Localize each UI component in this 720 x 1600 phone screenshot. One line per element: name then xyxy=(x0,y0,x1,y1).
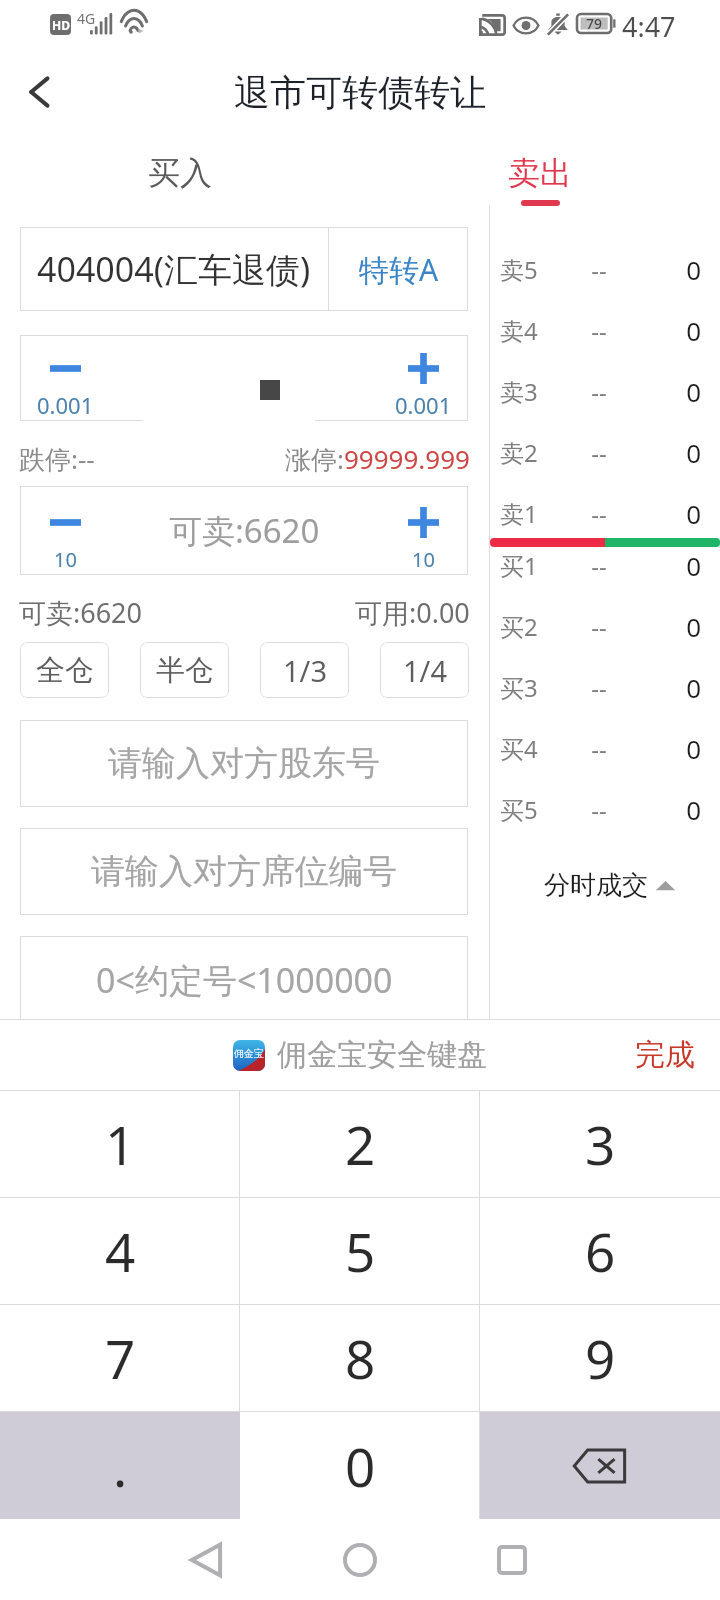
button[interactable]: 半仓 xyxy=(140,642,229,698)
button[interactable]: 买3 xyxy=(490,663,720,711)
staticText: 0 xyxy=(627,609,701,644)
staticText: -- xyxy=(571,314,627,347)
button[interactable]: . xyxy=(0,1412,240,1519)
button[interactable]: 8 xyxy=(240,1305,480,1411)
button[interactable]: 6 xyxy=(480,1198,720,1304)
staticText: 买5 xyxy=(500,793,571,826)
staticText: 0 xyxy=(627,548,701,583)
button[interactable]: 完成 xyxy=(610,1024,720,1086)
staticText: 1/3 xyxy=(283,651,327,690)
staticText: 4:47 xyxy=(622,8,676,45)
staticText: 卖4 xyxy=(500,314,571,347)
staticText: 涨停: xyxy=(285,441,344,477)
staticText: 8 xyxy=(345,1322,376,1394)
staticText: 7 xyxy=(105,1322,136,1394)
staticText: 4G xyxy=(77,9,96,28)
staticText: 0<约定号<1000000 xyxy=(96,957,393,1003)
button[interactable]: 卖5 xyxy=(490,245,720,293)
staticText: 0.001 xyxy=(37,390,94,420)
staticText: 99999.999 xyxy=(344,441,470,476)
button[interactable]: 卖2 xyxy=(490,428,720,476)
button[interactable]: 9 xyxy=(480,1305,720,1411)
staticText: 2 xyxy=(345,1108,376,1180)
staticText: -- xyxy=(571,793,627,826)
button[interactable]: 卖3 xyxy=(490,367,720,415)
staticText: 半仓 xyxy=(156,652,214,689)
button[interactable]: Recent apps xyxy=(462,1520,562,1600)
staticText: . xyxy=(113,1430,128,1502)
staticText: 3 xyxy=(585,1108,616,1180)
staticText: 卖2 xyxy=(500,436,571,469)
staticText: 买2 xyxy=(500,610,571,643)
button[interactable]: 买4 xyxy=(490,724,720,772)
button[interactable]: Back xyxy=(8,62,72,122)
staticText: 0 xyxy=(627,496,701,531)
staticText: 跌停:-- xyxy=(19,441,95,477)
button[interactable]: 7 xyxy=(0,1305,240,1411)
button[interactable]: 5 xyxy=(240,1198,480,1304)
staticText: 0 xyxy=(627,670,701,705)
button[interactable]: 卖1 xyxy=(490,489,720,537)
staticText: 卖5 xyxy=(500,253,571,286)
staticText: 买1 xyxy=(500,549,571,582)
staticText: 6 xyxy=(585,1215,616,1287)
button[interactable]: 卖出 xyxy=(360,153,720,209)
staticText: 卖1 xyxy=(500,497,571,530)
button[interactable]: Decrease xyxy=(20,335,110,421)
button[interactable]: 4 xyxy=(0,1198,240,1304)
staticText: -- xyxy=(571,610,627,643)
button[interactable]: 1 xyxy=(0,1091,240,1197)
staticText: 0 xyxy=(627,313,701,348)
staticText: 特转A xyxy=(359,249,439,290)
button[interactable]: 1/4 xyxy=(380,642,469,698)
staticText: 5 xyxy=(345,1215,376,1287)
button[interactable]: 请输入对方席位编号 xyxy=(20,828,468,915)
staticText: -- xyxy=(571,732,627,765)
staticText: HD xyxy=(52,17,70,33)
button[interactable]: Increase xyxy=(378,486,468,575)
button[interactable]: 3 xyxy=(480,1091,720,1197)
staticText: 9 xyxy=(585,1322,616,1394)
staticText: -- xyxy=(571,671,627,704)
button[interactable]: Decrease xyxy=(20,486,110,575)
button[interactable]: 买入 xyxy=(0,153,360,209)
button[interactable]: 0 xyxy=(240,1412,480,1519)
button[interactable]: 买1 xyxy=(490,541,720,589)
button[interactable]: 分时成交 xyxy=(494,862,720,908)
staticText: 全仓 xyxy=(36,652,94,689)
button[interactable]: Home xyxy=(310,1520,410,1600)
button[interactable]: 0<约定号<1000000 xyxy=(20,936,468,1023)
staticText: 买3 xyxy=(500,671,571,704)
staticText: 佣金宝 xyxy=(234,1047,264,1060)
staticText: 可卖:6620 xyxy=(19,594,143,631)
staticText: 0 xyxy=(627,731,701,766)
button[interactable]: 卖4 xyxy=(490,306,720,354)
button[interactable]: Back xyxy=(156,1520,256,1600)
button[interactable]: Backspace xyxy=(480,1412,720,1519)
button[interactable]: 特转A xyxy=(329,227,468,311)
staticText: 1 xyxy=(105,1108,136,1180)
staticText: 10 xyxy=(412,546,435,573)
button[interactable]: 1/3 xyxy=(260,642,349,698)
button[interactable]: Increase xyxy=(378,335,468,421)
staticText: 0.001 xyxy=(395,390,452,420)
button[interactable]: 404004(汇车退债) xyxy=(20,227,328,311)
staticText: 0 xyxy=(345,1430,376,1502)
staticText: 买入 xyxy=(148,153,212,193)
staticText: 买4 xyxy=(500,732,571,765)
staticText: 卖3 xyxy=(500,375,571,408)
staticText: 分时成交 xyxy=(544,869,648,902)
staticText: 请输入对方股东号 xyxy=(108,742,380,785)
button[interactable]: 2 xyxy=(240,1091,480,1197)
button[interactable]: 全仓 xyxy=(20,642,109,698)
staticText: 可用:0.00 xyxy=(355,594,470,631)
staticText: 卖出 xyxy=(508,153,572,193)
staticText: 1/4 xyxy=(403,651,447,690)
button[interactable]: 买5 xyxy=(490,785,720,833)
staticText: 0 xyxy=(627,374,701,409)
button[interactable]: 买2 xyxy=(490,602,720,650)
other: Backspace xyxy=(572,1446,628,1486)
button[interactable]: 请输入对方股东号 xyxy=(20,720,468,807)
staticText: -- xyxy=(571,436,627,469)
staticText: 404004(汇车退债) xyxy=(37,246,311,292)
